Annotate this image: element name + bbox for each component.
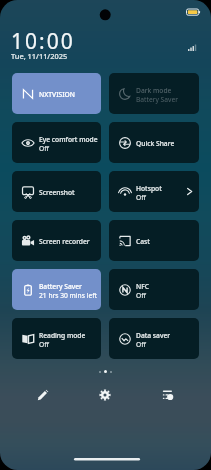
staticText: Battery Saver xyxy=(136,95,178,104)
button[interactable]: NXTVISION xyxy=(12,73,101,114)
staticText: Off xyxy=(136,340,146,349)
staticText: NFC xyxy=(136,282,149,291)
button[interactable]: Device care xyxy=(152,379,184,411)
staticText: NXTVISION xyxy=(39,90,75,99)
button[interactable]: Settings xyxy=(89,379,121,411)
staticText: Screen recorder xyxy=(39,237,90,246)
button[interactable]: Quick Share xyxy=(109,122,199,163)
button[interactable]: Battery Saver xyxy=(12,269,101,310)
button[interactable]: Screen recorder xyxy=(12,220,101,261)
button[interactable]: Hotspot xyxy=(109,171,199,212)
staticText: Dark mode xyxy=(136,86,172,95)
button[interactable]: Cast xyxy=(109,220,199,261)
staticText: Battery Saver xyxy=(39,282,82,291)
staticText: Off xyxy=(136,291,146,300)
staticText: Tue, 11/11/2025 xyxy=(11,51,68,61)
staticText: Eye comfort mode xyxy=(39,135,98,144)
staticText: Cast xyxy=(136,237,150,246)
button[interactable]: Eye comfort mode xyxy=(12,122,101,163)
staticText: Reading mode xyxy=(39,331,86,340)
staticText: Screenshot xyxy=(39,188,75,197)
staticText: Off xyxy=(39,144,49,153)
button[interactable]: NFC xyxy=(109,269,199,310)
staticText: Hotspot xyxy=(136,184,162,193)
staticText: Off xyxy=(39,340,49,349)
button[interactable]: Edit quick settings xyxy=(27,379,59,411)
staticText: Off xyxy=(136,193,146,202)
staticText: Data saver xyxy=(136,331,171,340)
staticText: Quick Share xyxy=(136,139,175,148)
button[interactable]: Screenshot xyxy=(12,171,101,212)
staticText: 21 hrs 30 mins left xyxy=(39,291,97,300)
button[interactable]: Data saver xyxy=(109,318,199,359)
button[interactable]: Dark mode xyxy=(109,73,199,114)
button[interactable]: Reading mode xyxy=(12,318,101,359)
staticText: 10:00 xyxy=(11,27,75,56)
